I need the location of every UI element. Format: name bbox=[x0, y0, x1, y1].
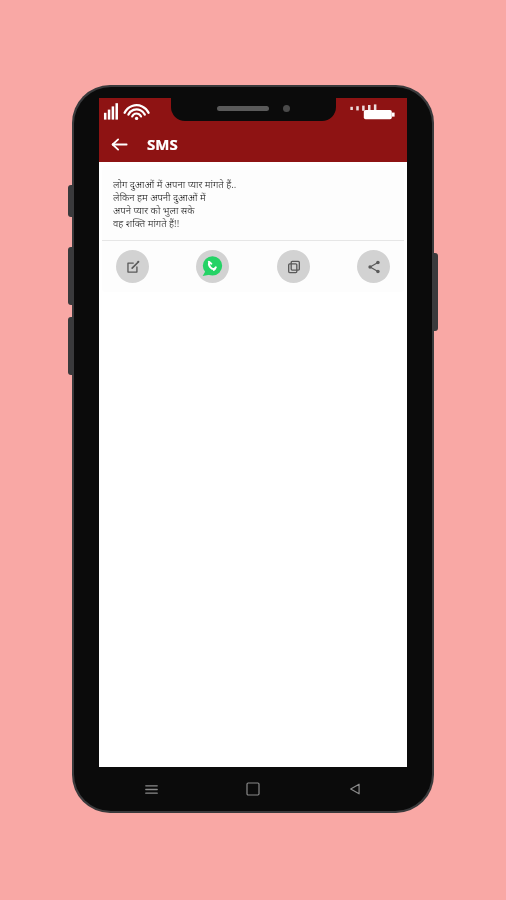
staticText: लेकिन हम अपनी दुआओं में bbox=[113, 191, 206, 204]
staticText: SMS bbox=[147, 134, 178, 154]
button[interactable]: Share on WhatsApp bbox=[196, 250, 229, 283]
button[interactable]: Compose message bbox=[116, 250, 149, 283]
button[interactable]: Recents bbox=[134, 772, 168, 806]
staticText: अपने प्यार को भुला सके bbox=[113, 204, 195, 217]
button[interactable]: Home bbox=[236, 772, 270, 806]
button[interactable]: Back bbox=[103, 128, 135, 160]
button[interactable]: Copy bbox=[277, 250, 310, 283]
staticText: वह शक्ति मांगते हैं!! bbox=[113, 217, 180, 230]
staticText: लोग दुआओं में अपना प्यार मांगते हैं.. bbox=[113, 178, 237, 191]
button[interactable]: Back bbox=[338, 772, 372, 806]
button[interactable]: Share bbox=[357, 250, 390, 283]
button[interactable]: लोग दुआओं में अपना प्यार मांगते हैं.. bbox=[102, 166, 404, 292]
